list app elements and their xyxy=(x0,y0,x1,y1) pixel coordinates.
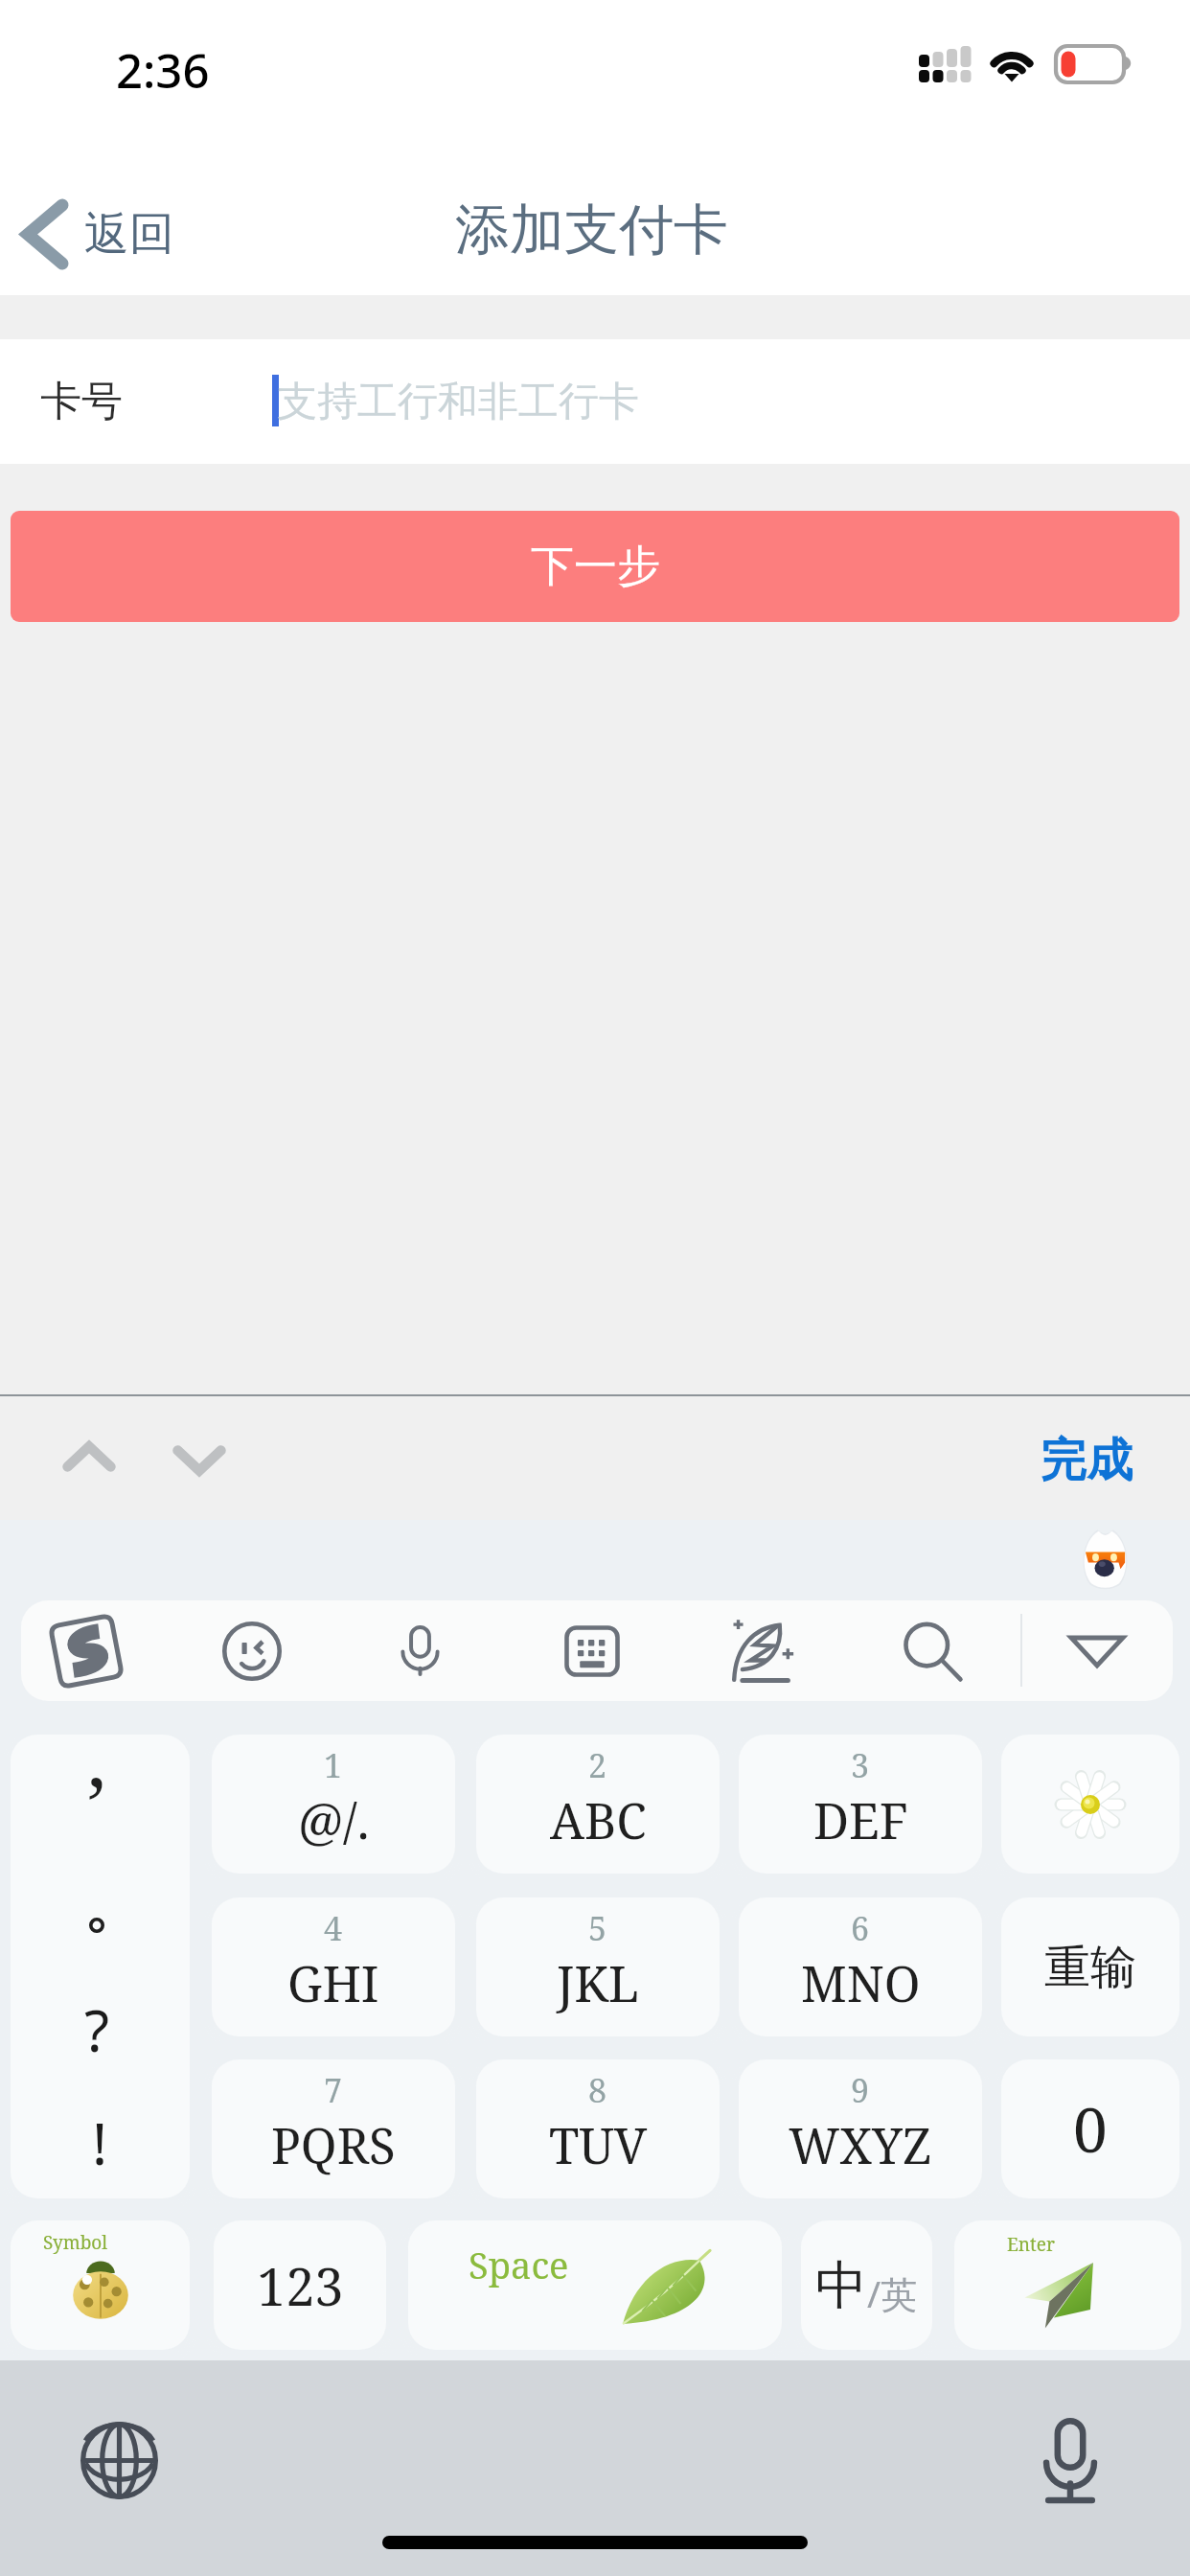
button[interactable]: 返回 xyxy=(0,186,195,283)
staticText: @/. xyxy=(298,1786,370,1852)
button[interactable]: Dictation xyxy=(1019,2410,1120,2511)
button[interactable]: 1 @/. xyxy=(212,1735,455,1874)
staticText: 8 xyxy=(588,2068,607,2112)
button[interactable]: 2 ABC xyxy=(476,1735,720,1874)
button[interactable]: 4 GHI xyxy=(212,1897,455,2036)
button[interactable]: Emoji xyxy=(170,1600,334,1701)
button[interactable]: Voice input xyxy=(337,1600,502,1701)
button[interactable]: Punctuation xyxy=(11,1735,190,2198)
button[interactable]: Switch keyboard language xyxy=(69,2410,170,2511)
staticText: JKL xyxy=(557,1949,639,2015)
button[interactable]: 完成 xyxy=(1025,1416,1148,1505)
staticText: ! xyxy=(92,2104,108,2182)
button[interactable]: Sogou xyxy=(21,1600,169,1701)
staticText: 6 xyxy=(851,1906,870,1950)
staticText: PQRS xyxy=(271,2111,396,2177)
staticText: 4 xyxy=(324,1906,343,1950)
staticText: ? xyxy=(84,1990,110,2069)
staticText: 返回 xyxy=(84,206,174,263)
staticText: 卡号 xyxy=(40,376,123,427)
button[interactable]: 下一步 xyxy=(11,511,1179,622)
staticText: Space xyxy=(469,2240,569,2289)
staticText: 1 xyxy=(324,1743,343,1787)
staticText: 下一步 xyxy=(531,540,660,594)
button[interactable]: Zero xyxy=(1001,2059,1179,2198)
button[interactable]: Search xyxy=(850,1600,1015,1701)
staticText: 5 xyxy=(588,1906,607,1950)
staticText: 重输 xyxy=(1044,1939,1136,1996)
button[interactable]: 5 JKL xyxy=(476,1897,720,2036)
button[interactable]: 6 MNO xyxy=(739,1897,982,2036)
button[interactable]: Hide keyboard xyxy=(1023,1600,1171,1701)
button[interactable]: 123 xyxy=(214,2220,386,2350)
staticText: 中 xyxy=(815,2253,867,2318)
staticText: Enter xyxy=(1007,2232,1055,2257)
staticText: 2 xyxy=(588,1743,607,1787)
button[interactable]: Symbols xyxy=(11,2220,190,2350)
staticText: GHI xyxy=(287,1949,379,2015)
staticText: MNO xyxy=(801,1949,921,2015)
staticText: TUV xyxy=(549,2111,648,2177)
staticText: WXYZ xyxy=(789,2111,932,2177)
staticText: 添加支付卡 xyxy=(455,195,728,264)
button[interactable]: Enter xyxy=(954,2220,1181,2350)
staticText: Symbol xyxy=(43,2230,108,2255)
staticText: 9 xyxy=(851,2068,870,2112)
staticText: 支持工行和非工行卡 xyxy=(277,377,639,427)
staticText: 7 xyxy=(324,2068,343,2112)
button[interactable]: Chinese / English xyxy=(801,2220,932,2350)
button[interactable]: Space xyxy=(408,2220,782,2350)
staticText: 3 xyxy=(851,1743,870,1787)
staticText: 123 xyxy=(257,2250,344,2321)
staticText: DEF xyxy=(813,1786,908,1852)
button[interactable]: 8 TUV xyxy=(476,2059,720,2198)
staticText: ’ xyxy=(87,1751,106,1855)
staticText: 完成 xyxy=(1041,1432,1133,1489)
staticText: /英 xyxy=(867,2268,918,2318)
button[interactable]: Handwriting xyxy=(679,1600,844,1701)
button[interactable]: Re-enter xyxy=(1001,1897,1179,2036)
button[interactable]: 7 PQRS xyxy=(212,2059,455,2198)
button[interactable]: Keyboard layout xyxy=(510,1600,675,1701)
button[interactable]: Next field xyxy=(152,1418,246,1503)
staticText: 0 xyxy=(1073,2087,1108,2171)
staticText: ABC xyxy=(550,1786,647,1852)
staticText: 2:36 xyxy=(116,38,210,103)
button[interactable]: 9 WXYZ xyxy=(739,2059,982,2198)
button[interactable]: 3 DEF xyxy=(739,1735,982,1874)
button[interactable]: Sticker xyxy=(1001,1735,1179,1874)
button[interactable]: Card number input xyxy=(0,339,1190,464)
button[interactable]: Previous field xyxy=(42,1414,136,1499)
